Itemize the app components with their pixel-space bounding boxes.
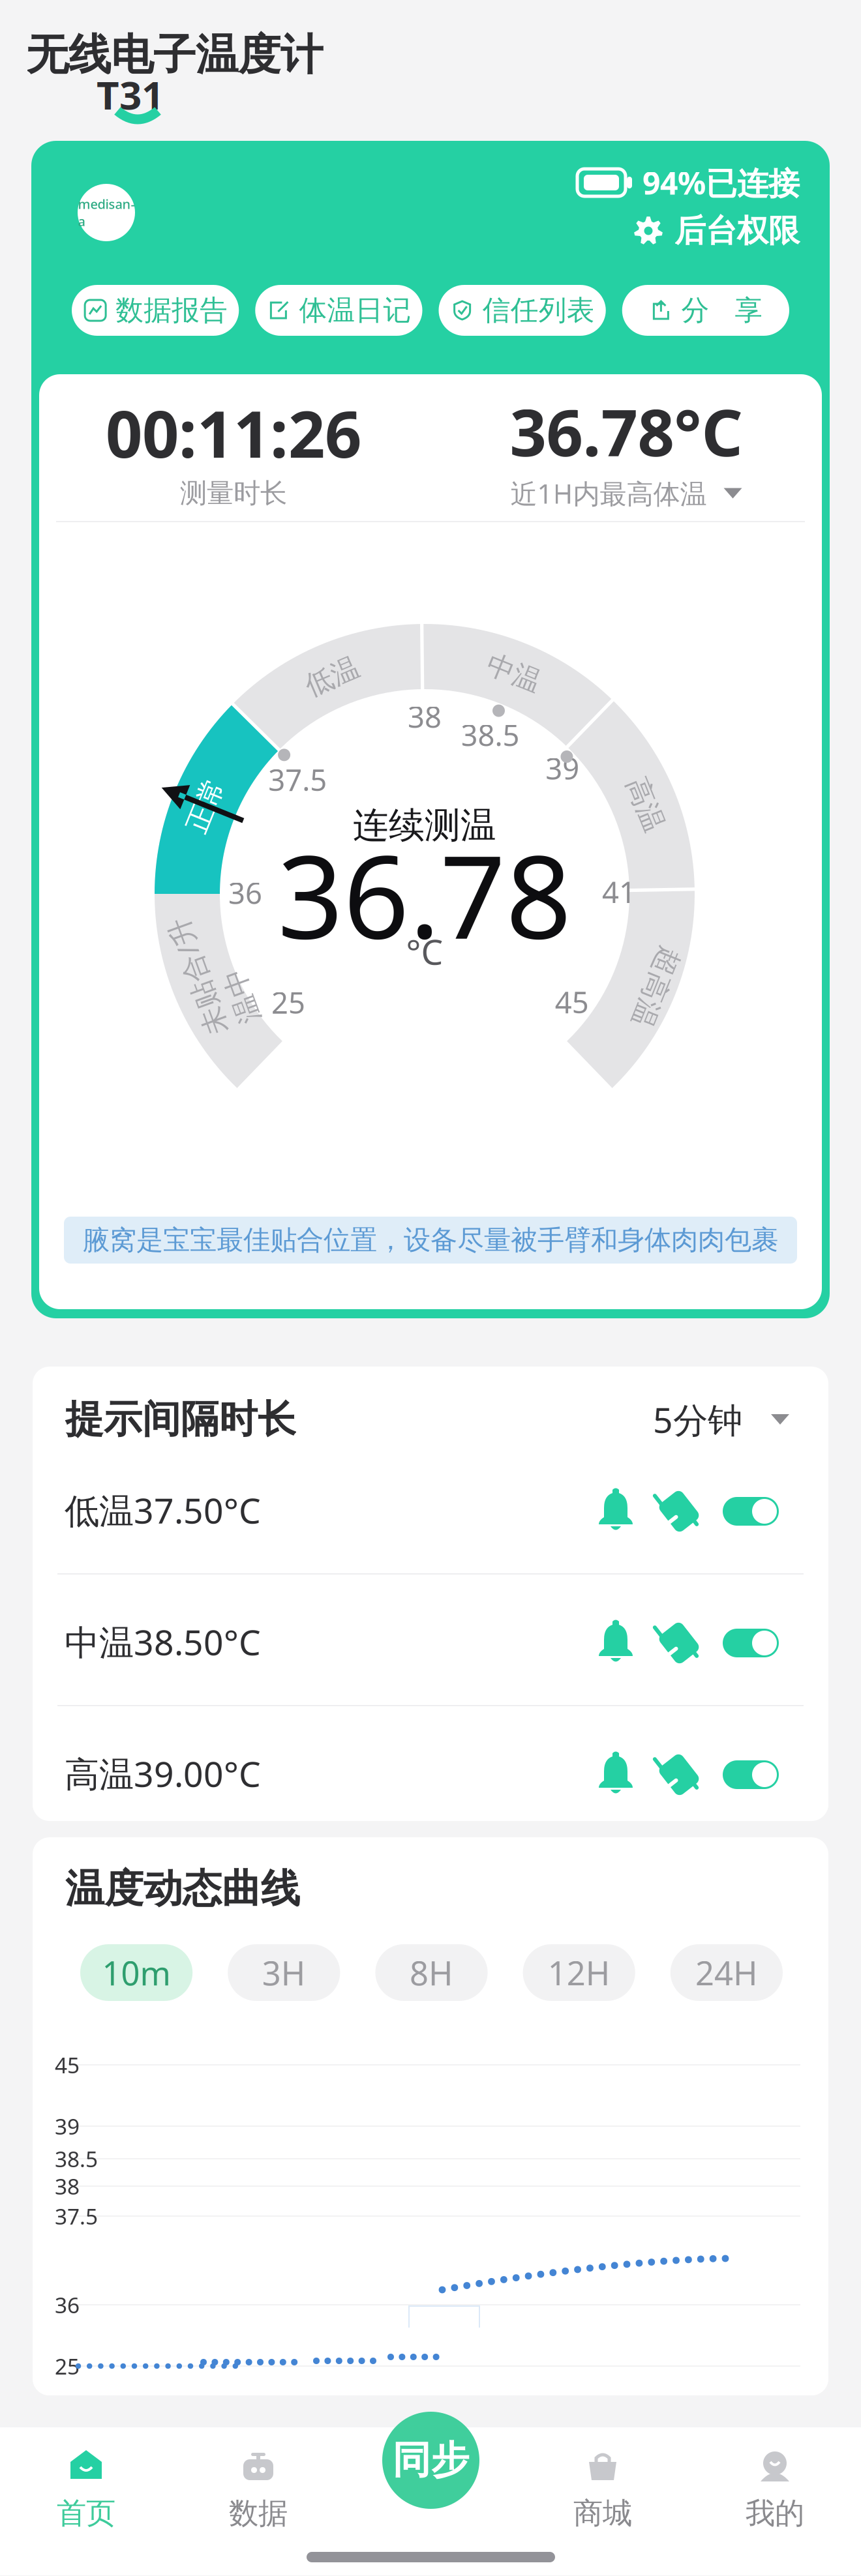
- staticText: 45: [555, 982, 589, 1022]
- staticText: 数据: [229, 2495, 288, 2532]
- staticText: 温度动态曲线: [65, 1865, 300, 1913]
- staticText: 36.78°C: [510, 389, 743, 474]
- button[interactable]: 同步: [382, 2412, 479, 2509]
- staticText: 3H: [262, 1951, 306, 1995]
- button[interactable]: 首页: [0, 2427, 172, 2575]
- button[interactable]: 10m: [80, 1944, 193, 2001]
- staticText: 中温38.50°C: [65, 1619, 261, 1665]
- button[interactable]: 分 享: [622, 285, 789, 336]
- staticText: 5分钟: [653, 1396, 742, 1442]
- staticText: 36: [228, 873, 262, 912]
- button[interactable]: 体温日记: [255, 285, 422, 336]
- button[interactable]: 8H: [375, 1944, 488, 2001]
- staticText: 无线电子温度计: [26, 29, 323, 81]
- button[interactable]: 提示音: [597, 1620, 635, 1666]
- staticText: 低温: [304, 660, 360, 694]
- button[interactable]: 数据: [172, 2427, 344, 2575]
- staticText: 25: [55, 2352, 80, 2381]
- staticText: 超高温: [614, 970, 698, 1004]
- button[interactable]: 提示音: [597, 1488, 635, 1534]
- staticText: 12H: [548, 1951, 610, 1995]
- staticText: 45: [55, 2050, 80, 2079]
- staticText: 后台权限: [674, 212, 800, 250]
- staticText: 36: [55, 2290, 80, 2319]
- staticText: 近1H内最高体温: [510, 475, 707, 511]
- staticText: 体温日记: [299, 293, 411, 327]
- staticText: 39: [545, 748, 579, 788]
- staticText: 提示间隔时长: [65, 1396, 296, 1443]
- button[interactable]: 商城: [517, 2427, 689, 2575]
- staticText: T31: [97, 68, 164, 120]
- staticText: 10m: [102, 1951, 171, 1995]
- button[interactable]: 12H: [523, 1944, 635, 2001]
- staticText: 38: [55, 2172, 80, 2201]
- button[interactable]: 开关: [723, 1497, 779, 1526]
- staticText: 同步: [392, 2437, 469, 2484]
- button[interactable]: 3H: [228, 1944, 340, 2001]
- button[interactable]: 24H: [670, 1944, 783, 2001]
- staticText: °C: [406, 928, 443, 974]
- staticText: medisana: [78, 195, 135, 230]
- staticText: 94%已连接: [642, 162, 800, 203]
- button[interactable]: 信任列表: [439, 285, 606, 336]
- staticText: 低温37.50°C: [65, 1487, 261, 1533]
- staticText: 中温: [486, 656, 542, 690]
- staticText: 36.78: [278, 818, 572, 970]
- staticText: 信任列表: [482, 293, 595, 327]
- staticText: 我的: [746, 2495, 804, 2532]
- staticText: 00:11:26: [106, 390, 361, 475]
- staticText: 高温: [617, 788, 673, 822]
- staticText: 数据报告: [116, 293, 228, 327]
- staticText: 37.5: [268, 760, 327, 799]
- staticText: 38.5: [55, 2144, 98, 2173]
- staticText: 正常: [178, 788, 234, 823]
- staticText: 37.5: [55, 2202, 98, 2231]
- button[interactable]: 震动: [657, 1752, 702, 1798]
- staticText: 24H: [695, 1951, 758, 1995]
- staticText: 25: [271, 983, 305, 1022]
- staticText: 连续测温: [353, 804, 496, 847]
- button[interactable]: 5分钟: [515, 1400, 789, 1438]
- button[interactable]: 震动: [657, 1488, 702, 1534]
- button[interactable]: 后台权限: [539, 214, 800, 248]
- staticText: 商城: [573, 2495, 632, 2532]
- staticText: 39: [55, 2112, 80, 2141]
- button[interactable]: 开关: [723, 1629, 779, 1657]
- staticText: 38.5: [461, 715, 520, 754]
- staticText: 腋窝是宝宝最佳贴合位置，设备尽量被手臂和身体肉肉包裹: [83, 1224, 778, 1257]
- staticText: 41: [602, 872, 636, 911]
- staticText: 首页: [57, 2495, 115, 2532]
- button[interactable]: 开关: [723, 1760, 779, 1789]
- button[interactable]: 震动: [657, 1620, 702, 1666]
- staticText: 未贴合/升温中: [152, 935, 274, 1006]
- staticText: 38: [408, 697, 442, 736]
- staticText: 8H: [410, 1951, 453, 1995]
- button[interactable]: 数据报告: [72, 285, 239, 336]
- button[interactable]: 我的: [689, 2427, 861, 2575]
- button[interactable]: 提示音: [597, 1752, 635, 1798]
- staticText: 测量时长: [180, 477, 287, 510]
- staticText: 高温39.00°C: [65, 1750, 261, 1796]
- staticText: 分 享: [681, 293, 763, 327]
